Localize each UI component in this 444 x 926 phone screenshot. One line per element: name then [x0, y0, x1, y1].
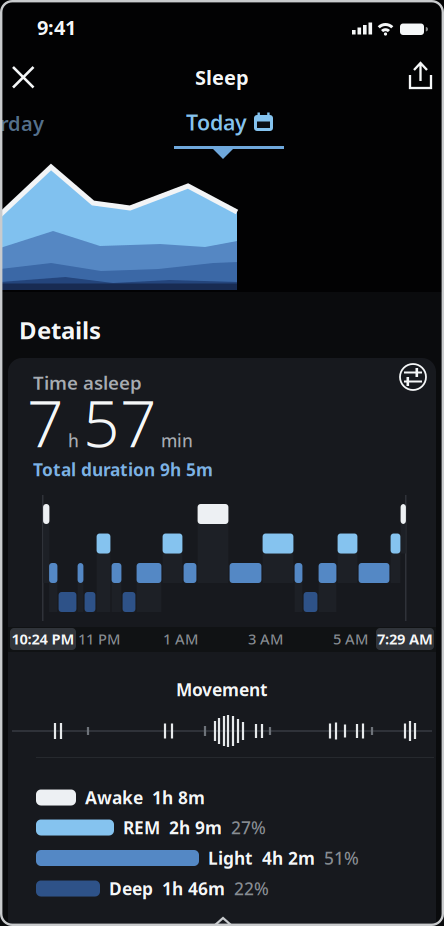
staticText: 7	[27, 380, 64, 465]
staticText: 10:24 PM	[11, 629, 74, 648]
staticText: Sleep	[195, 64, 249, 91]
staticText: 4h 2m	[262, 846, 315, 869]
staticText: 57	[83, 380, 157, 465]
staticText: 1h 46m	[162, 877, 225, 900]
button[interactable]: Share	[0, 0, 40, 40]
staticText: Time asleep	[33, 370, 142, 395]
staticText: 5 AM	[333, 629, 368, 648]
staticText: Light	[208, 846, 253, 869]
staticText: Awake	[85, 786, 143, 809]
staticText: Deep	[109, 877, 153, 900]
staticText: min	[161, 429, 193, 452]
button[interactable]: Expand	[0, 0, 44, 16]
staticText: 3 AM	[248, 629, 283, 648]
staticText: 22%	[234, 877, 269, 900]
staticText: 27%	[231, 816, 266, 839]
button[interactable]: Chart settings	[0, 0, 40, 40]
staticText: 2h 9m	[169, 816, 222, 839]
button[interactable]: Today	[0, 0, 444, 926]
staticText: rday	[0, 110, 44, 137]
staticText: h	[68, 429, 79, 452]
staticText: Movement	[176, 678, 268, 701]
staticText: 11 PM	[78, 629, 120, 648]
staticText: 9:41	[37, 14, 76, 41]
staticText: 1 AM	[163, 629, 198, 648]
staticText: 1h 8m	[152, 786, 205, 809]
staticText: REM	[123, 816, 160, 839]
button[interactable]: Close	[0, 0, 46, 46]
staticText: Total duration 9h 5m	[33, 458, 213, 481]
staticText: 7:29 AM	[377, 629, 433, 648]
staticText: 51%	[324, 846, 359, 869]
staticText: Today	[186, 108, 247, 136]
button[interactable]: Yesterday	[0, 0, 44, 27]
staticText: Details	[19, 314, 101, 346]
